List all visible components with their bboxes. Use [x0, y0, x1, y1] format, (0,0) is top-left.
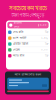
staticText: অ্যাপ ডাউনলোড করুন — [14, 73, 41, 77]
button[interactable]: ব্যালেন্স দেখুন — [7, 22, 49, 28]
button[interactable]: সেন্ড মানি — [7, 30, 49, 35]
staticText: ফ্রি — [45, 42, 48, 46]
staticText: ফ্রি — [45, 54, 48, 58]
button[interactable]: অ্যাপ ডাউনলোড করুন — [5, 71, 51, 94]
button[interactable]: অ্যাড মানি — [7, 53, 49, 58]
staticText: ব্যালেন্স দেখুন — [14, 21, 22, 29]
staticText: সবচেয়ে কম খরচে — [9, 5, 47, 12]
staticText: ১.৪৯ — [41, 36, 48, 40]
button[interactable]: মোবাইল রিচার্জ — [7, 41, 49, 47]
staticText: ৳ ০.০০ — [38, 23, 47, 27]
staticText: মোবাইল রিচার্জ — [13, 42, 28, 46]
button[interactable]: ক্যাশ আউট — [7, 35, 49, 41]
staticText: টাকা পাঠান দেশজুড়ে — [11, 13, 44, 18]
button[interactable]: পেমেন্ট — [7, 47, 49, 53]
staticText: ০.০০ — [41, 48, 48, 52]
staticText: সেন্ড মানি — [13, 30, 24, 34]
staticText: অ্যাড মানি — [13, 54, 25, 58]
staticText: ক্যাশ আউট — [13, 36, 26, 40]
staticText: পেমেন্ট — [13, 48, 20, 52]
staticText: ফ্রি — [45, 30, 48, 34]
